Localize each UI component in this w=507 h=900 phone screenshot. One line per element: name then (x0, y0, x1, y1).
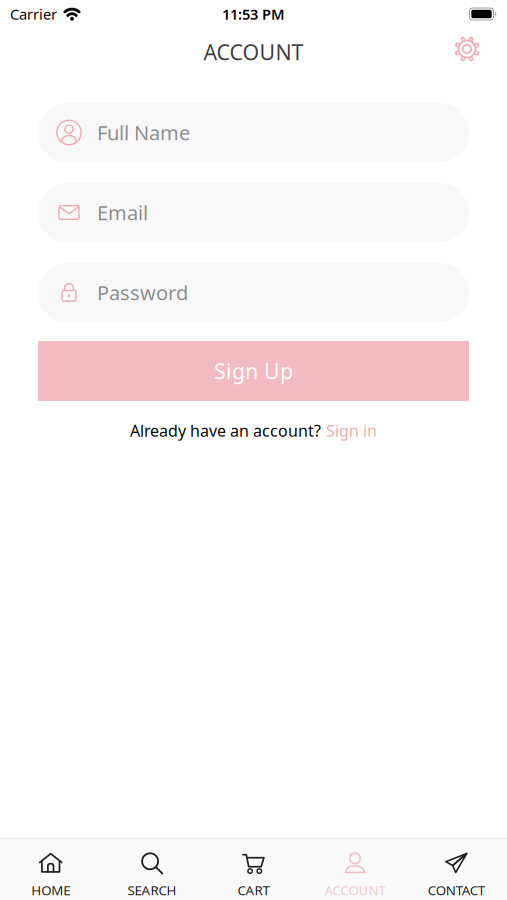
button[interactable]: Sign Up (38, 341, 469, 401)
staticText: 11:53 PM (222, 4, 285, 24)
button[interactable]: CONTACT (406, 849, 507, 899)
staticText: SEARCH (128, 881, 177, 899)
staticText: CONTACT (428, 881, 485, 899)
button[interactable]: Sign in (326, 420, 377, 441)
button[interactable]: Full Name (38, 103, 469, 162)
staticText: HOME (31, 881, 70, 899)
button[interactable]: ACCOUNT (304, 849, 406, 899)
button[interactable]: SEARCH (101, 849, 203, 899)
staticText: Password (97, 279, 188, 306)
staticText: Already have an account? (130, 420, 321, 441)
button[interactable]: Password (38, 263, 469, 322)
staticText: CART (237, 881, 269, 899)
button[interactable]: Email (38, 183, 469, 242)
staticText: ACCOUNT (203, 38, 303, 66)
staticText: Sign in (326, 420, 377, 441)
staticText: Carrier (10, 4, 57, 24)
button[interactable]: Settings (453, 35, 481, 63)
staticText: ACCOUNT (324, 881, 385, 899)
button[interactable]: HOME (0, 849, 101, 899)
staticText: Sign Up (214, 357, 293, 385)
staticText: Email (97, 199, 148, 226)
staticText: Full Name (97, 119, 190, 146)
button[interactable]: CART (203, 849, 304, 899)
